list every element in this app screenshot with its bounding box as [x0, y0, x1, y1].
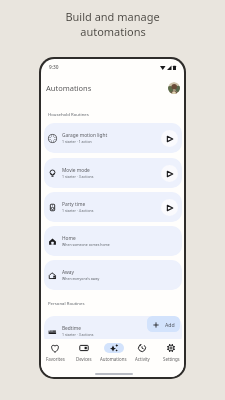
button[interactable]: Play routine — [161, 130, 178, 147]
staticText: 9:30 — [49, 64, 59, 71]
staticText: Home — [62, 235, 76, 242]
staticText: Build and manage — [65, 9, 160, 24]
button[interactable]: Bedtime — [44, 316, 182, 346]
button[interactable]: Movie mode — [44, 158, 182, 188]
staticText: Add — [165, 321, 175, 328]
staticText: 1 starter · 3 actions — [62, 174, 94, 179]
button[interactable]: Account — [168, 82, 180, 94]
staticText: Personal Routines — [48, 300, 85, 306]
button[interactable]: Activity — [127, 339, 156, 365]
staticText: 1 starter · 3 actions — [62, 332, 94, 337]
staticText: Automations — [46, 83, 92, 93]
staticText: Bedtime — [62, 325, 81, 332]
staticText: 1 starter · 4 actions — [62, 208, 94, 213]
button[interactable]: Add — [147, 316, 180, 332]
button[interactable]: Settings — [156, 339, 184, 365]
staticText: Garage motion light — [62, 132, 108, 139]
button[interactable]: Automations — [99, 339, 128, 365]
staticText: Activity — [135, 356, 150, 362]
button[interactable]: Away — [44, 260, 182, 290]
staticText: Party time — [62, 201, 86, 208]
staticText: Away — [62, 269, 74, 276]
button[interactable]: Devices — [69, 339, 98, 365]
button[interactable]: Play routine — [161, 199, 178, 216]
staticText: Favorites — [46, 356, 65, 362]
button[interactable]: Party time — [44, 192, 182, 222]
staticText: When someone comes home — [62, 242, 110, 247]
staticText: Devices — [76, 356, 92, 362]
button[interactable]: Play routine — [161, 165, 178, 182]
staticText: 1 starter · 1 action — [62, 139, 92, 144]
staticText: Household Routines — [48, 111, 89, 117]
button[interactable]: Favorites — [41, 339, 69, 365]
button[interactable]: Home — [44, 226, 182, 256]
staticText: When everyone's away — [62, 276, 100, 281]
staticText: Settings — [163, 356, 180, 362]
staticText: automations — [80, 24, 146, 39]
staticText: Movie mode — [62, 167, 90, 174]
button[interactable]: Garage motion light — [44, 123, 182, 153]
staticText: Automations — [100, 356, 127, 362]
